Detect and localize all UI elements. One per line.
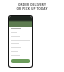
- staticText: ORDER DELIVERY OR PICK UP TODAY: [16, 3, 48, 11]
- button[interactable]: Order now: [11, 59, 30, 63]
